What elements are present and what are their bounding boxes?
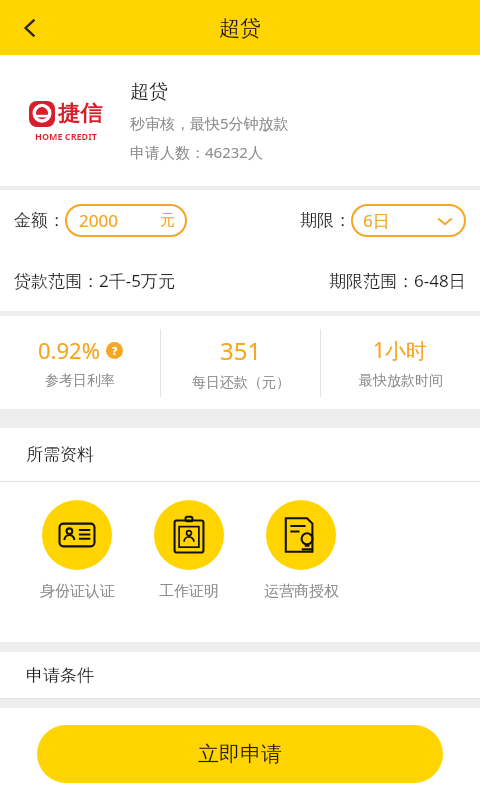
button[interactable]: 立即申请 xyxy=(37,725,443,783)
staticText: 身份证认证 xyxy=(40,582,115,601)
staticText: 2000 xyxy=(79,209,118,232)
staticText: 最快放款时间 xyxy=(359,372,443,390)
button[interactable]: Back xyxy=(6,4,54,52)
staticText: 金额： xyxy=(14,210,65,231)
staticText: 运营商授权 xyxy=(264,582,339,601)
staticText: 6日 xyxy=(363,209,390,232)
button[interactable]: 0.92% xyxy=(0,316,160,409)
staticText: 超贷 xyxy=(219,15,261,41)
staticText: 捷信 xyxy=(58,100,102,128)
staticText: HOME CREDIT xyxy=(35,130,97,142)
staticText: 元 xyxy=(160,211,175,230)
staticText: 贷款范围：2千-5万元 xyxy=(14,269,329,292)
staticText: ? xyxy=(112,343,118,358)
staticText: 秒审核，最快5分钟放款 xyxy=(130,113,289,133)
button[interactable]: 运营商授权 xyxy=(256,500,346,601)
staticText: 申请人数：46232人 xyxy=(130,142,263,162)
staticText: 所需资料 xyxy=(26,444,94,465)
staticText: 351 xyxy=(220,334,262,367)
button[interactable]: 身份证认证 xyxy=(32,500,122,601)
button[interactable]: 工作证明 xyxy=(144,500,234,601)
staticText: 每日还款（元） xyxy=(192,374,290,392)
staticText: 超贷 xyxy=(130,80,168,104)
button[interactable]: 2000 xyxy=(65,204,187,237)
staticText: 立即申请 xyxy=(198,741,282,767)
staticText: 参考日利率 xyxy=(45,372,115,390)
button[interactable]: 1小时 xyxy=(321,316,480,409)
staticText: 1小时 xyxy=(373,336,428,365)
staticText: 0.92% xyxy=(38,335,100,365)
staticText: 期限范围：6-48日 xyxy=(329,269,466,292)
staticText: 申请条件 xyxy=(26,665,94,686)
staticText: 工作证明 xyxy=(159,582,219,601)
button[interactable]: 351 xyxy=(161,316,320,409)
staticText: 期限： xyxy=(300,210,351,231)
button[interactable]: 6日 xyxy=(351,204,466,237)
